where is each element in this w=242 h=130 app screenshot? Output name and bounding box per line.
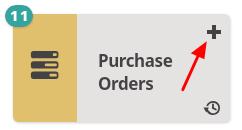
- staticText: Purchase Orders: [98, 49, 173, 94]
- button[interactable]: History: [197, 93, 227, 122]
- staticText: 11: [10, 5, 30, 25]
- button[interactable]: Purchase Orders: [13, 14, 230, 122]
- button[interactable]: 11: [5, 5, 33, 27]
- button[interactable]: Add purchase order: [199, 17, 229, 47]
